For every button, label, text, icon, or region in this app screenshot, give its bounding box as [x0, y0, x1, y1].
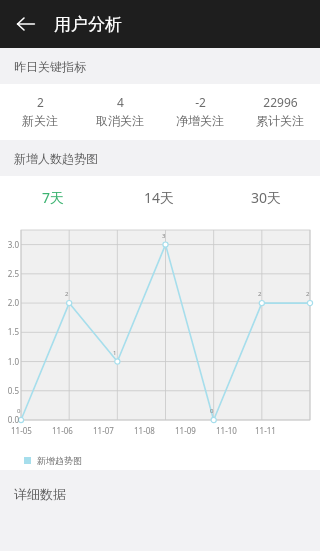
staticText: 累计关注: [256, 113, 304, 128]
staticText: 11-09: [175, 425, 196, 436]
staticText: 30天: [251, 188, 282, 207]
staticText: 3.0: [0, 239, 19, 250]
staticText: 14天: [144, 188, 175, 207]
staticText: 11-08: [134, 425, 155, 436]
staticText: 净增关注: [176, 113, 224, 128]
staticText: 2: [65, 290, 69, 298]
staticText: 4: [117, 94, 124, 110]
staticText: 22996: [263, 94, 298, 110]
staticText: 新增趋势图: [37, 455, 82, 466]
staticText: 2.5: [0, 268, 19, 279]
button[interactable]: 7天: [0, 176, 106, 218]
staticText: 1.0: [0, 356, 19, 367]
button[interactable]: 14天: [106, 176, 213, 218]
button[interactable]: -2: [160, 94, 240, 128]
button[interactable]: 22996: [240, 94, 320, 128]
staticText: 1.5: [0, 326, 19, 337]
staticText: 新关注: [22, 113, 58, 128]
staticText: 昨日关键指标: [14, 59, 86, 74]
staticText: 11-10: [216, 425, 237, 436]
staticText: 0: [210, 407, 214, 415]
staticText: 0.0: [0, 414, 19, 425]
staticText: 1: [113, 349, 117, 357]
staticText: 0.5: [0, 385, 19, 396]
staticText: 11-11: [255, 425, 276, 436]
staticText: 2: [306, 290, 310, 298]
staticText: 2.0: [0, 297, 19, 308]
staticText: 2: [258, 290, 262, 298]
staticText: 用户分析: [54, 14, 122, 35]
button[interactable]: Back: [8, 6, 44, 42]
button[interactable]: 2: [0, 94, 80, 128]
staticText: 取消关注: [96, 113, 144, 128]
staticText: 新增人数趋势图: [14, 151, 98, 166]
staticText: 2: [37, 94, 44, 110]
staticText: 0: [17, 407, 21, 415]
button[interactable]: 4: [80, 94, 160, 128]
staticText: 7天: [42, 188, 65, 207]
staticText: 11-06: [52, 425, 73, 436]
staticText: -2: [195, 94, 206, 110]
staticText: 详细数据: [14, 486, 66, 502]
staticText: 3: [162, 232, 166, 240]
staticText: 11-07: [93, 425, 114, 436]
button[interactable]: 30天: [213, 176, 320, 218]
staticText: 11-05: [11, 425, 32, 436]
